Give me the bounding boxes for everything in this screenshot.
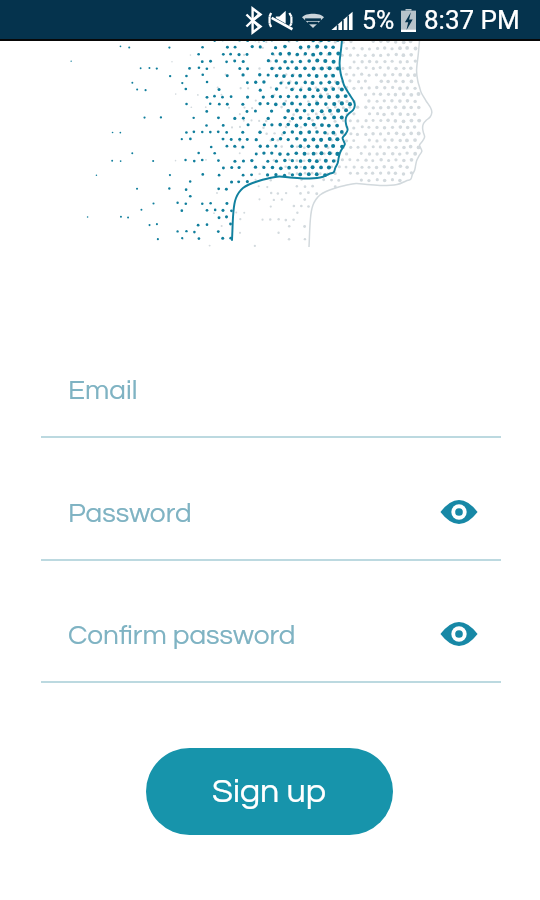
- staticText: 8:37 PM: [424, 5, 520, 35]
- staticText: Confirm password: [68, 621, 296, 650]
- button[interactable]: Sign up: [146, 748, 393, 835]
- button[interactable]: Password: [0, 497, 540, 561]
- staticText: 5%: [362, 6, 395, 35]
- button[interactable]: Email: [0, 374, 540, 438]
- staticText: Email: [68, 376, 138, 405]
- button[interactable]: Toggle password visibility: [435, 488, 483, 536]
- staticText: Sign up: [212, 774, 327, 809]
- staticText: Password: [68, 499, 192, 528]
- button[interactable]: Toggle password visibility: [435, 610, 483, 658]
- button[interactable]: Confirm password: [0, 619, 540, 683]
